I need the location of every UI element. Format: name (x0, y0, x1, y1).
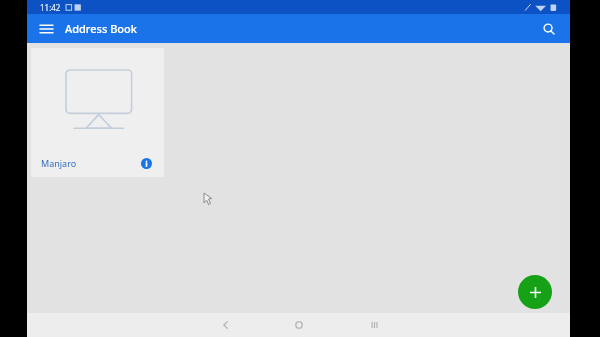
button[interactable]: Add contact (518, 275, 552, 309)
button[interactable]: Back (211, 313, 241, 337)
button[interactable]: Recent apps (359, 313, 389, 337)
button[interactable]: Search (536, 16, 562, 42)
button[interactable]: Open navigation drawer (33, 16, 59, 42)
staticText: Address Book (65, 21, 137, 36)
staticText: Manjaro (41, 157, 77, 169)
staticText: 11:42 (40, 2, 61, 13)
button[interactable]: Home (284, 313, 314, 337)
button[interactable]: Device info (137, 154, 155, 172)
button[interactable]: Manjaro (31, 48, 164, 177)
